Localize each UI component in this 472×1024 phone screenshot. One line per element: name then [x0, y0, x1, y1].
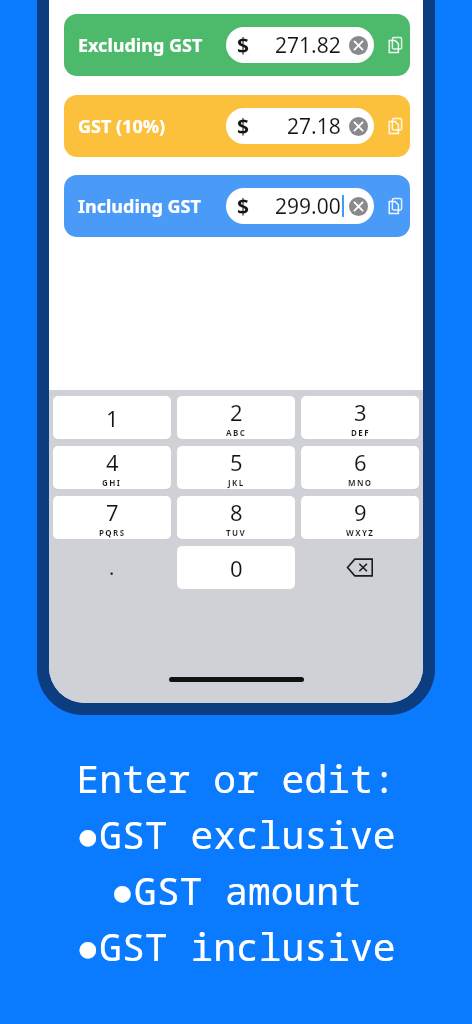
staticText: . — [109, 554, 115, 581]
button[interactable]: Excluding GST — [64, 14, 410, 76]
button[interactable]: Backspace — [301, 546, 419, 589]
staticText: 8 — [230, 497, 243, 527]
button[interactable]: 9 — [301, 496, 419, 539]
staticText: 2 — [230, 397, 243, 427]
staticText: 27.18 — [287, 112, 341, 141]
button[interactable]: 5 — [177, 446, 295, 489]
staticText: 299.00 — [275, 192, 341, 221]
button[interactable]: $ — [226, 188, 374, 224]
button[interactable]: $ — [226, 27, 374, 63]
button[interactable]: Copy — [384, 33, 408, 57]
staticText: $ — [237, 31, 250, 60]
button[interactable]: $ — [226, 108, 374, 144]
staticText: GHI — [102, 477, 122, 488]
staticText: 4 — [106, 447, 119, 477]
staticText: ●GST amount — [111, 864, 362, 916]
staticText: 3 — [354, 397, 367, 427]
staticText: WXYZ — [346, 527, 375, 538]
staticText: TUV — [226, 527, 247, 538]
button[interactable]: . — [53, 546, 171, 589]
button[interactable]: Clear — [349, 36, 368, 55]
staticText: 0 — [230, 553, 243, 583]
staticText: 9 — [354, 497, 367, 527]
button[interactable]: 3 — [301, 396, 419, 439]
staticText: Enter or edit: — [76, 752, 396, 804]
button[interactable]: Copy — [384, 194, 408, 218]
button[interactable]: Clear — [349, 117, 368, 136]
button[interactable]: 1 — [53, 396, 171, 439]
staticText: $ — [237, 112, 250, 141]
staticText: GST (10%) — [78, 114, 166, 139]
staticText: ABC — [226, 427, 247, 438]
staticText: Including GST — [78, 194, 201, 219]
staticText: 271.82 — [275, 31, 341, 60]
staticText: MNO — [348, 477, 373, 488]
staticText: JKL — [228, 477, 245, 488]
button[interactable]: 2 — [177, 396, 295, 439]
button[interactable]: 0 — [177, 546, 295, 589]
staticText: Excluding GST — [78, 33, 203, 58]
button[interactable]: 7 — [53, 496, 171, 539]
button[interactable]: Including GST — [64, 175, 410, 237]
button[interactable]: 6 — [301, 446, 419, 489]
button[interactable]: 8 — [177, 496, 295, 539]
button[interactable]: GST (10%) — [64, 95, 410, 157]
button[interactable]: Clear — [349, 197, 368, 216]
staticText: PQRS — [99, 527, 126, 538]
staticText: $ — [237, 192, 250, 221]
button[interactable]: 4 — [53, 446, 171, 489]
button[interactable]: Copy — [384, 114, 408, 138]
staticText: ●GST exclusive — [76, 808, 396, 860]
staticText: 7 — [106, 497, 119, 527]
staticText: 5 — [230, 447, 243, 477]
staticText: 6 — [354, 447, 367, 477]
staticText: 1 — [106, 403, 119, 433]
staticText: DEF — [351, 427, 370, 438]
staticText: ●GST inclusive — [76, 920, 396, 972]
